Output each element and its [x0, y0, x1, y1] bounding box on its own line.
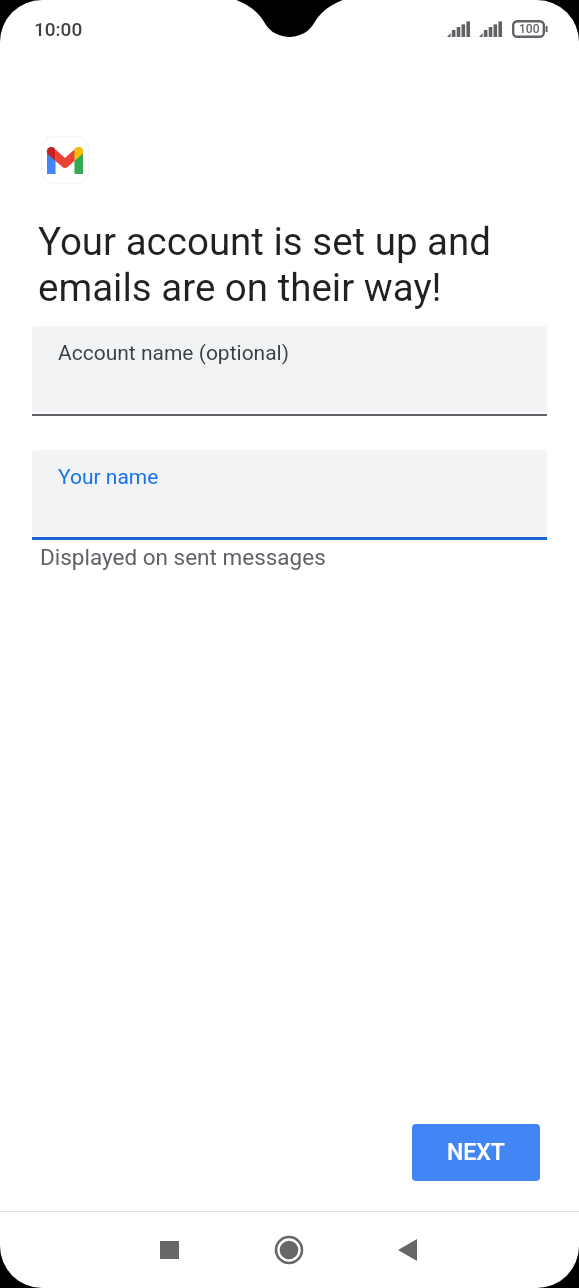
staticText: 10:00 [34, 18, 83, 40]
staticText: 100 [519, 22, 540, 36]
staticText: Your account is set up and emails are on… [38, 219, 492, 310]
button[interactable]: Account name (optional) [32, 326, 547, 412]
button[interactable]: Back [377, 1220, 437, 1280]
staticText: Account name (optional) [58, 341, 290, 366]
button[interactable]: Recent apps [139, 1220, 199, 1280]
button[interactable]: Your name [32, 450, 547, 536]
staticText: NEXT [447, 1139, 505, 1166]
button[interactable]: Home [259, 1220, 319, 1280]
staticText: Your name [58, 465, 159, 490]
button[interactable]: NEXT [412, 1124, 540, 1181]
staticText: Displayed on sent messages [40, 544, 326, 570]
